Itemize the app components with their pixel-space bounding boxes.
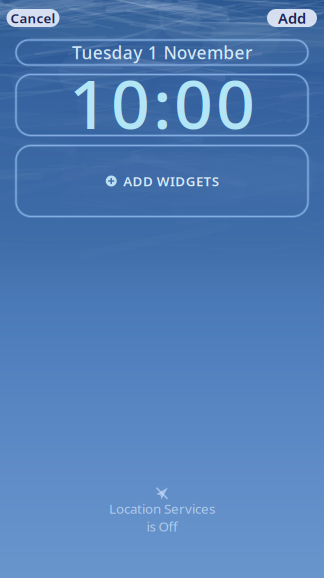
- staticText: Tuesday 1 November: [72, 41, 252, 64]
- staticText: 10:00: [69, 57, 255, 148]
- button[interactable]: 10:00: [16, 74, 308, 135]
- button[interactable]: Add: [267, 9, 317, 27]
- staticText: is Off: [146, 517, 177, 535]
- staticText: ADD WIDGETS: [123, 172, 219, 190]
- button[interactable]: Cancel: [6, 9, 59, 27]
- staticText: Cancel: [10, 9, 55, 27]
- staticText: Location Services: [109, 500, 215, 517]
- staticText: Add: [278, 8, 306, 28]
- button[interactable]: Tuesday 1 November: [16, 40, 308, 65]
- button[interactable]: ADD WIDGETS: [16, 145, 308, 216]
